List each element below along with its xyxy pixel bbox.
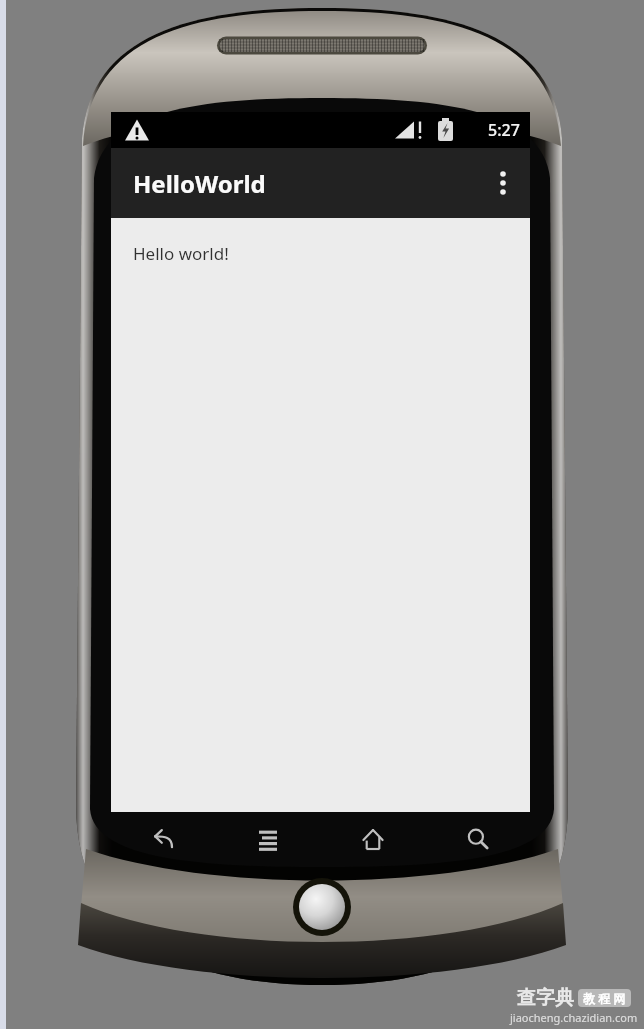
staticText: HelloWorld (133, 167, 266, 200)
button[interactable]: More options (476, 148, 530, 218)
button[interactable]: Search (425, 812, 530, 868)
staticText: 教 程 网 (583, 990, 626, 1006)
staticText: 查字典 (517, 986, 574, 1010)
staticText: Hello world! (133, 242, 229, 265)
staticText: jiaocheng.chazidian.com (510, 1010, 638, 1025)
button[interactable]: Menu (215, 812, 320, 868)
staticText: 5:27 (488, 119, 520, 141)
button[interactable]: Home (320, 812, 425, 868)
button[interactable]: Back (111, 812, 215, 868)
